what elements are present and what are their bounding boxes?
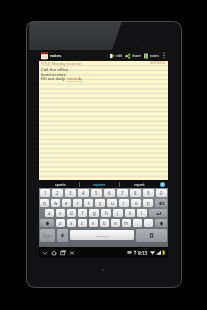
staticText: z [59,220,62,226]
staticText: English(US) [96,234,109,237]
button[interactable]: e [62,199,71,207]
staticText: d [70,210,73,216]
staticText: n [114,220,117,226]
staticText: b [103,220,106,226]
button[interactable]: Recent apps [58,247,67,258]
staticText: 2 [56,190,59,196]
button[interactable]: 7 [117,189,128,197]
staticText: Send in time [41,72,66,78]
button[interactable]: g [89,209,99,217]
button[interactable]: j [113,209,123,217]
button[interactable]: r [73,199,82,207]
button[interactable]: u [107,199,117,207]
button[interactable]: 0 [156,189,167,197]
staticText: x [70,220,73,226]
button[interactable]: z [56,219,65,227]
staticText: 4 [82,190,85,196]
staticText: 5 [95,190,98,196]
button[interactable]: , [133,219,142,227]
button[interactable]: sports [41,180,79,188]
button[interactable] [40,219,54,227]
button[interactable]: c [78,219,87,227]
staticText: 9:13 [138,250,148,256]
button[interactable]: k [125,209,135,217]
button[interactable]: 8 [130,189,141,197]
button[interactable]: o [131,199,141,207]
button[interactable]: 4 [78,189,89,197]
button[interactable]: edit [108,50,124,61]
button[interactable]: h [101,209,111,217]
button[interactable]: 3 [65,189,76,197]
staticText: j [117,210,119,216]
button[interactable]: n [111,219,120,227]
button[interactable]: Close suggestions [159,180,166,188]
staticText: 3 [69,190,72,196]
button[interactable] [155,199,167,207]
button[interactable]: notes [142,50,160,61]
staticText: records [67,76,83,82]
button[interactable]: i [119,199,129,207]
button[interactable]: 6 [104,189,115,197]
button[interactable]: a [45,209,54,217]
staticText: s [59,210,62,216]
button[interactable]: 5 [91,189,102,197]
staticText: 7 [121,190,124,196]
staticText: 4/25/2014 [150,61,166,65]
staticText: t [88,200,90,206]
button[interactable] [136,229,167,242]
button[interactable]: d [67,209,76,217]
staticText: c [81,220,84,226]
button[interactable]: App icon [41,52,48,59]
button[interactable]: 2 [52,189,63,197]
button[interactable]: 9 [143,189,154,197]
button[interactable]: English(US) [70,230,134,240]
button[interactable]: TITLE: Monday to-do list [39,61,168,180]
staticText: 6 [108,190,111,196]
button[interactable]: 1 [40,189,50,197]
button[interactable]: t [84,199,93,207]
staticText: TITLE: Monday to-do list [41,61,82,66]
button[interactable]: Hide keyboard [40,247,49,258]
button[interactable] [57,229,68,242]
button[interactable]: More options [160,50,168,61]
staticText: q [43,200,46,206]
staticText: notes [50,53,62,58]
button[interactable]: report [120,180,159,188]
staticText: 0 [160,190,163,196]
button[interactable]: Screenshot [67,247,76,258]
staticText: e [65,200,68,206]
staticText: u [111,200,114,206]
staticText: m [124,220,129,226]
staticText: Sym [43,233,52,239]
staticText: v [92,220,95,226]
staticText: 9 [147,190,150,196]
staticText: Call the office [41,67,69,73]
button[interactable]: . [144,219,153,227]
button[interactable]: share [124,50,142,61]
button[interactable]: x [67,219,76,227]
button[interactable]: l [137,209,147,217]
button[interactable]: y [95,199,105,207]
button[interactable]: m [122,219,131,227]
button[interactable]: s [56,209,65,217]
staticText: g [93,210,96,216]
button[interactable]: b [100,219,109,227]
staticText: p [147,200,150,206]
staticText: sports [55,182,66,187]
button[interactable]: q [40,199,49,207]
button[interactable]: v [89,219,98,227]
staticText: share [132,53,141,58]
staticText: Fill out daily [41,76,67,82]
staticText: h [105,210,108,216]
button[interactable]: f [78,209,87,217]
staticText: r [77,200,79,206]
button[interactable]: w [51,199,60,207]
button[interactable]: Sym [40,229,55,242]
staticText: notes [150,53,159,58]
button[interactable]: reports [80,180,119,188]
button[interactable]: Home [49,247,58,258]
staticText: a [48,210,51,216]
button[interactable] [155,219,167,227]
button[interactable]: p [143,199,153,207]
button[interactable] [149,209,167,217]
